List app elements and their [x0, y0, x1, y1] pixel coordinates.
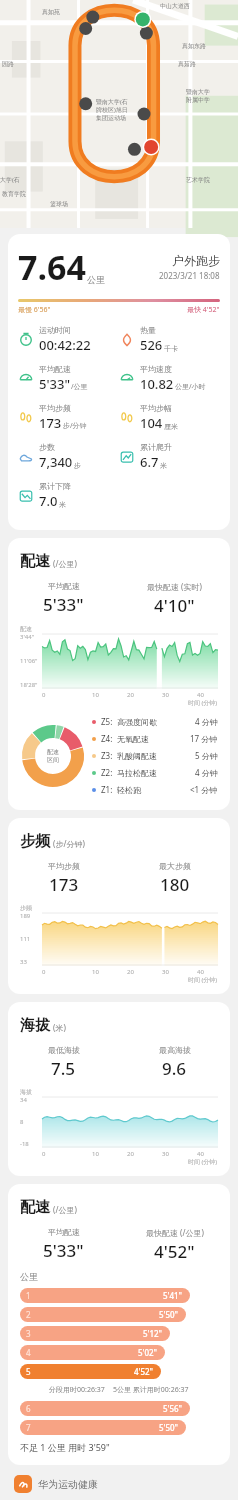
staticText: 40 — [183, 968, 218, 976]
staticText: 教育学院 — [2, 190, 26, 198]
staticText: 5'50" — [20, 1309, 178, 1320]
staticText: -18 — [20, 1140, 29, 1148]
staticText: 173 — [39, 414, 62, 432]
staticText: 热量 — [140, 325, 156, 335]
staticText: 189 — [20, 912, 31, 920]
staticText: 配速 — [20, 1198, 50, 1217]
button[interactable]: Z5: — [92, 716, 218, 727]
staticText: 步数 — [39, 442, 55, 452]
staticText: 平均配速 — [48, 1227, 80, 1237]
staticText: 111 — [20, 935, 31, 943]
button[interactable]: 7 — [20, 1420, 218, 1435]
button[interactable]: 5 — [20, 1364, 218, 1379]
staticText: 2 — [26, 1309, 31, 1320]
staticText: 配速 — [47, 748, 59, 756]
staticText: 最慢 6'56" — [18, 305, 51, 315]
button[interactable]: Route map — [0, 0, 238, 228]
staticText: 10 — [78, 1150, 113, 1158]
staticText: 不足 1 公里 用时 3'59" — [20, 1441, 110, 1453]
staticText: 华为运动健康 — [38, 1478, 98, 1491]
staticText: 9.6 — [162, 1057, 187, 1080]
button[interactable]: 2 — [20, 1307, 218, 1322]
staticText: 20 — [113, 1150, 148, 1158]
staticText: 步频 — [20, 832, 50, 851]
staticText: 时间 (分钟) — [188, 976, 218, 984]
button[interactable]: Z1: — [92, 784, 218, 795]
button[interactable]: 平均步频 — [18, 403, 119, 432]
staticText: 5'33" — [43, 593, 84, 616]
button[interactable]: 3 — [20, 1326, 218, 1341]
staticText: 米 — [59, 500, 66, 509]
staticText: 分段用时00:26:37 — [49, 1385, 105, 1395]
staticText: 5'50" — [20, 1422, 178, 1433]
staticText: 最大步频 — [159, 861, 191, 871]
button[interactable]: 平均速度 — [119, 364, 220, 393]
staticText: 5'41" — [20, 1290, 182, 1301]
staticText: 17 分钟 — [190, 733, 218, 744]
staticText: 7 — [26, 1422, 31, 1433]
staticText: 6 — [26, 1403, 31, 1414]
staticText: 马拉松配速 — [117, 768, 173, 778]
staticText: 海拔 — [20, 1016, 50, 1035]
staticText: 0 — [42, 691, 78, 699]
button[interactable]: 4 — [20, 1345, 218, 1360]
button[interactable]: 累计下降 — [18, 481, 119, 510]
staticText: 运动时间 — [39, 325, 71, 335]
staticText: 平均步幅 — [140, 403, 172, 413]
button[interactable]: 步数 — [18, 442, 119, 471]
staticText: 最快 4'52" — [187, 305, 220, 315]
button[interactable]: Z4: — [92, 733, 218, 744]
button[interactable]: Z2: — [92, 767, 218, 778]
staticText: 真茹路 — [178, 60, 196, 68]
staticText: 40 — [183, 691, 218, 699]
staticText: 00:42:22 — [39, 336, 91, 354]
staticText: 7,340 — [39, 453, 73, 471]
staticText: 平均步频 — [39, 403, 71, 413]
staticText: 173 — [49, 873, 79, 896]
button[interactable]: 运动时间 — [18, 325, 119, 354]
button[interactable]: 平均配速 — [18, 364, 119, 393]
staticText: 步/分钟 — [63, 421, 87, 431]
staticText: 厘米 — [164, 422, 178, 431]
staticText: 最低海拔 — [48, 1045, 80, 1055]
staticText: 配速 — [20, 552, 50, 571]
staticText: Z5: — [101, 716, 113, 727]
staticText: 18'28" — [20, 681, 38, 689]
staticText: 526 — [140, 336, 163, 354]
staticText: 平均配速 — [48, 581, 80, 591]
button[interactable]: 平均步幅 — [119, 403, 220, 432]
staticText: 最高海拔 — [159, 1045, 191, 1055]
button[interactable]: 热量 — [119, 325, 220, 354]
staticText: /公里 — [71, 382, 88, 392]
staticText: 时间 (分钟) — [188, 1158, 218, 1166]
staticText: 步 — [74, 461, 81, 470]
staticText: 30 — [148, 968, 183, 976]
staticText: 11'06" — [20, 657, 38, 665]
staticText: 4'52" — [154, 1240, 195, 1263]
staticText: 20 — [113, 968, 148, 976]
staticText: 5'12" — [20, 1328, 162, 1339]
button[interactable]: 6 — [20, 1401, 218, 1416]
staticText: 2023/3/21 18:08 — [159, 270, 220, 281]
button[interactable]: 华为运动健康 — [14, 1475, 238, 1493]
staticText: 最快配速 (实时) — [147, 581, 202, 592]
staticText: Z2: — [101, 767, 113, 778]
button[interactable]: 1 — [20, 1288, 218, 1303]
staticText: 公里 — [20, 1271, 38, 1282]
button[interactable]: Z3: — [92, 750, 218, 761]
staticText: 104 — [140, 414, 163, 432]
staticText: 0 — [42, 968, 78, 976]
staticText: 10 — [78, 968, 113, 976]
staticText: 4'52" — [20, 1366, 153, 1377]
staticText: 暨南大学(石 牌校区)旭日 集团运动场 — [96, 98, 128, 122]
staticText: 4'10" — [154, 594, 195, 617]
staticText: 乳酸阈配速 — [117, 751, 173, 761]
staticText: 34 — [20, 1096, 27, 1104]
staticText: 4 分钟 — [195, 716, 218, 727]
staticText: 7.64 — [18, 244, 86, 290]
staticText: 真如东路 — [182, 42, 206, 50]
staticText: 40 — [183, 1150, 218, 1158]
button[interactable]: 累计爬升 — [119, 442, 220, 471]
staticText: 30 — [148, 1150, 183, 1158]
staticText: 园路 — [2, 60, 14, 68]
